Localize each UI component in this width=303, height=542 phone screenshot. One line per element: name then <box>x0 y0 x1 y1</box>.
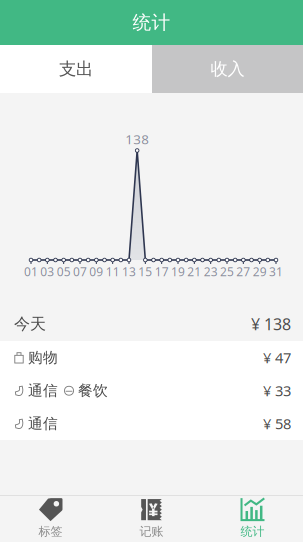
staticText: 07 <box>73 263 87 279</box>
staticText: 通信 <box>28 414 58 432</box>
staticText: 11 <box>106 263 120 279</box>
staticText: 统计 <box>132 11 170 34</box>
staticText: 27 <box>236 263 250 279</box>
button[interactable]: 购物 <box>0 341 303 374</box>
staticText: ¥ 47 <box>263 348 291 367</box>
staticText: 今天 <box>14 314 46 334</box>
button[interactable]: 标签 <box>0 495 101 542</box>
staticText: 05 <box>57 263 71 279</box>
staticText: 记账 <box>139 524 163 539</box>
staticText: ¥ 138 <box>251 313 291 335</box>
staticText: 21 <box>187 263 201 279</box>
staticText: 购物 <box>28 348 58 366</box>
staticText: 138 <box>125 130 149 148</box>
staticText: 标签 <box>38 524 62 539</box>
button[interactable]: 通信 <box>0 407 303 440</box>
button[interactable]: 通信 <box>0 374 303 407</box>
staticText: 收入 <box>210 58 244 80</box>
staticText: 15 <box>138 263 152 279</box>
staticText: 31 <box>269 263 283 279</box>
staticText: 23 <box>204 263 218 279</box>
button[interactable]: 记账 <box>101 495 202 542</box>
staticText: ¥ 58 <box>263 414 291 433</box>
staticText: 13 <box>122 263 136 279</box>
staticText: 25 <box>220 263 234 279</box>
staticText: 19 <box>171 263 185 279</box>
staticText: 03 <box>40 263 54 279</box>
staticText: 通信 <box>28 381 58 399</box>
button[interactable]: 收入 <box>152 45 303 93</box>
staticText: 统计 <box>240 524 264 539</box>
staticText: 01 <box>24 263 38 279</box>
staticText: ¥ 33 <box>263 381 291 400</box>
staticText: 09 <box>89 263 103 279</box>
staticText: 支出 <box>59 58 93 80</box>
button[interactable]: 统计 <box>202 495 303 542</box>
button[interactable]: 支出 <box>0 45 152 93</box>
staticText: 29 <box>253 263 267 279</box>
staticText: 餐饮 <box>78 381 108 399</box>
staticText: 17 <box>155 263 169 279</box>
